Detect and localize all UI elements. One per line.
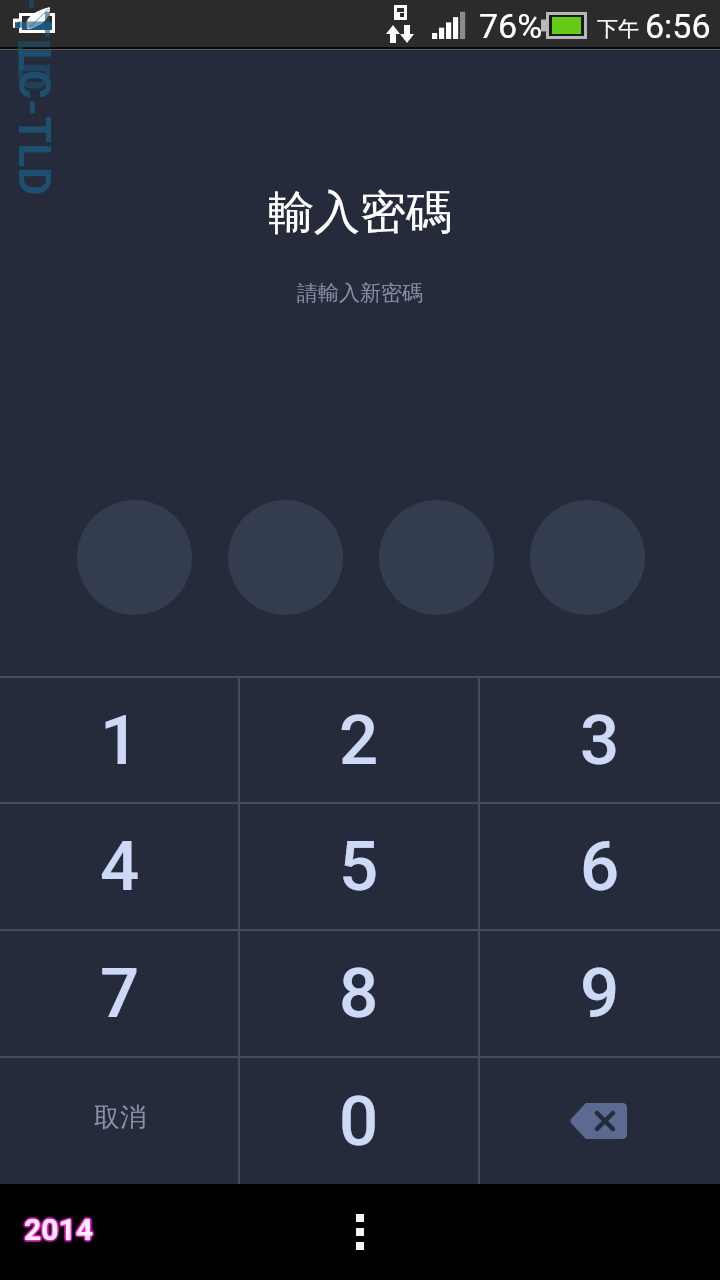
- staticText: 6: [580, 826, 620, 907]
- staticText: 5: [339, 826, 379, 907]
- staticText: 2014: [23, 1213, 92, 1248]
- staticText: 取消: [94, 1101, 146, 1134]
- staticText: 2014: [24, 1212, 93, 1247]
- staticText: 2014: [22, 1212, 91, 1247]
- button[interactable]: 8: [239, 929, 479, 1056]
- button[interactable]: 5: [239, 802, 479, 929]
- button[interactable]: 2: [239, 676, 479, 802]
- staticText: 2014: [22, 1211, 91, 1246]
- staticText: 2014: [24, 1212, 93, 1247]
- staticText: 2014: [25, 1212, 94, 1247]
- staticText: 2014: [23, 1214, 92, 1249]
- button[interactable]: More options: [348, 1206, 372, 1258]
- staticText: 2014: [23, 1210, 92, 1245]
- staticText: 9: [580, 953, 620, 1034]
- staticText: 2014: [23, 1211, 92, 1246]
- staticText: 2014: [24, 1213, 93, 1248]
- staticText: 請輸入新密碼: [297, 280, 423, 306]
- staticText: 2014: [25, 1213, 94, 1248]
- staticText: 0: [339, 1081, 379, 1162]
- staticText: 3: [580, 700, 620, 781]
- staticText: 2014: [25, 1211, 94, 1246]
- staticText: LC-TLD: [8, 0, 58, 91]
- button[interactable]: 6: [479, 802, 720, 929]
- staticText: 7: [100, 953, 140, 1034]
- staticText: 6:56: [645, 6, 711, 46]
- staticText: 2014: [26, 1212, 95, 1247]
- button[interactable]: 取消: [0, 1056, 239, 1184]
- staticText: 2014: [24, 1214, 93, 1249]
- staticText: 下午: [597, 16, 639, 42]
- staticText: 2014: [24, 1211, 93, 1246]
- staticText: 76%: [479, 6, 543, 46]
- button[interactable]: 9: [479, 929, 720, 1056]
- button[interactable]: 0: [239, 1056, 479, 1184]
- staticText: 2014: [26, 1211, 95, 1246]
- button[interactable]: 4: [0, 802, 239, 929]
- button[interactable]: Backspace: [479, 1056, 720, 1184]
- staticText: 2014: [23, 1212, 92, 1247]
- staticText: 輸入密碼: [268, 184, 452, 242]
- button[interactable]: 3: [479, 676, 720, 802]
- staticText: 2014: [25, 1214, 94, 1249]
- staticText: 2014: [24, 1210, 93, 1245]
- staticText: 4: [100, 826, 140, 907]
- staticText: 2: [339, 700, 379, 781]
- staticText: 2014: [26, 1213, 95, 1248]
- staticText: 2014: [22, 1213, 91, 1248]
- staticText: 2014: [25, 1210, 94, 1245]
- staticText: 1: [100, 700, 140, 781]
- button[interactable]: 1: [0, 676, 239, 802]
- staticText: LC-TLD: [7, 47, 59, 196]
- staticText: 8: [339, 953, 379, 1034]
- button[interactable]: 7: [0, 929, 239, 1056]
